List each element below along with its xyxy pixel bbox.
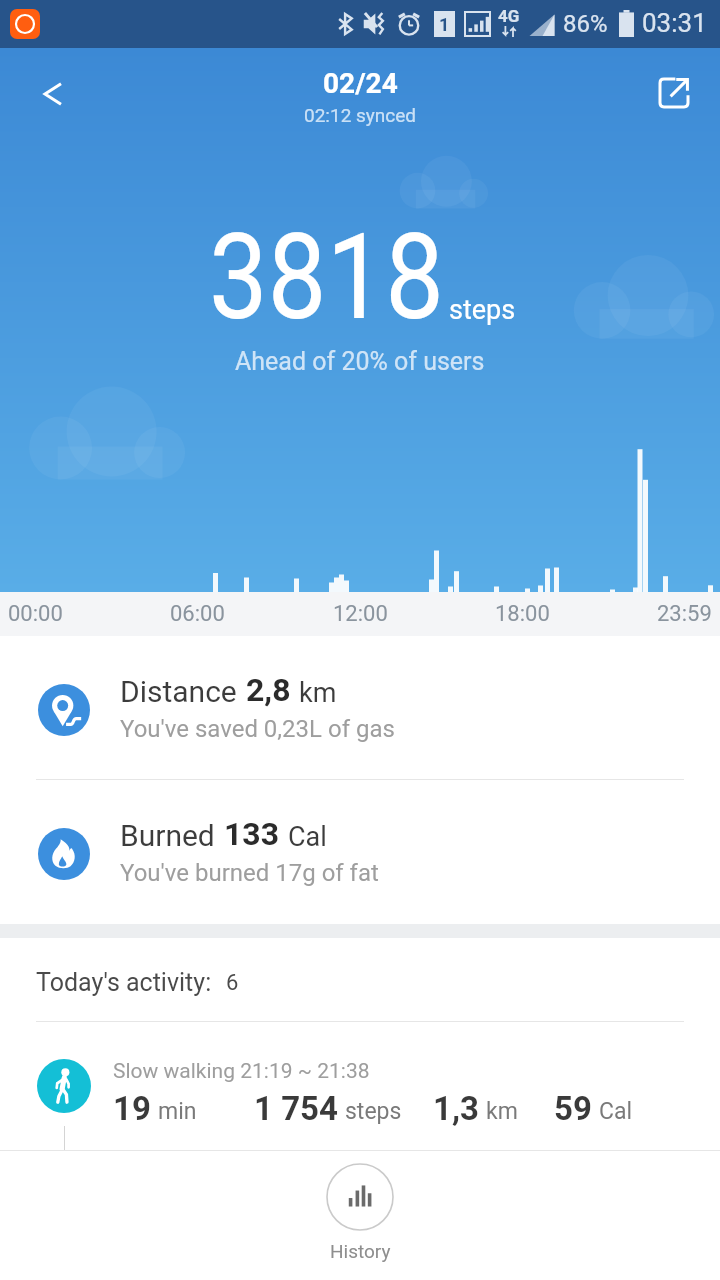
staticText: 02:12 synced xyxy=(304,104,417,126)
staticText: Distance xyxy=(120,674,237,709)
staticText: 02/24 xyxy=(323,67,398,100)
staticText: Slow walking 21:19 ~ 21:38 xyxy=(113,1059,370,1084)
staticText: km xyxy=(299,677,337,709)
staticText: Cal xyxy=(288,821,327,853)
staticText: Burned xyxy=(120,818,215,853)
staticText: 86% xyxy=(563,10,608,38)
button[interactable]: Share xyxy=(648,67,700,119)
staticText: 12:00 xyxy=(333,601,388,627)
button[interactable]: Burned xyxy=(0,780,720,924)
staticText: 1 754 xyxy=(254,1089,338,1128)
staticText: 23:59 xyxy=(657,601,712,627)
staticText: 19 xyxy=(113,1089,151,1128)
staticText: km xyxy=(486,1098,518,1125)
staticText: Cal xyxy=(599,1098,633,1125)
staticText: Ahead of 20% of users xyxy=(235,347,485,376)
button[interactable]: Back xyxy=(27,68,79,120)
staticText: You've saved 0,23L of gas xyxy=(120,715,395,743)
staticText: 59 xyxy=(554,1089,592,1128)
staticText: 6 xyxy=(226,970,239,996)
staticText: 00:00 xyxy=(8,601,63,627)
staticText: 18:00 xyxy=(495,601,550,627)
staticText: 133 xyxy=(224,815,280,853)
staticText: 1 xyxy=(439,14,450,35)
staticText: 2,8 xyxy=(246,671,291,709)
button[interactable]: History xyxy=(326,1163,394,1262)
staticText: min xyxy=(158,1098,197,1125)
staticText: steps xyxy=(449,294,516,326)
staticText: 06:00 xyxy=(170,601,225,627)
button[interactable]: Slow walking 21:19 ~ 21:38 xyxy=(0,1022,720,1150)
staticText: 1,3 xyxy=(433,1089,479,1128)
staticText: History xyxy=(330,1240,391,1262)
button[interactable]: Distance xyxy=(0,636,720,779)
staticText: 3818 xyxy=(209,208,444,330)
staticText: 03:31 xyxy=(642,8,707,38)
staticText: You've burned 17g of fat xyxy=(120,859,379,887)
staticText: Today's activity: xyxy=(36,968,212,997)
staticText: 4G xyxy=(498,6,520,26)
staticText: steps xyxy=(345,1098,402,1125)
